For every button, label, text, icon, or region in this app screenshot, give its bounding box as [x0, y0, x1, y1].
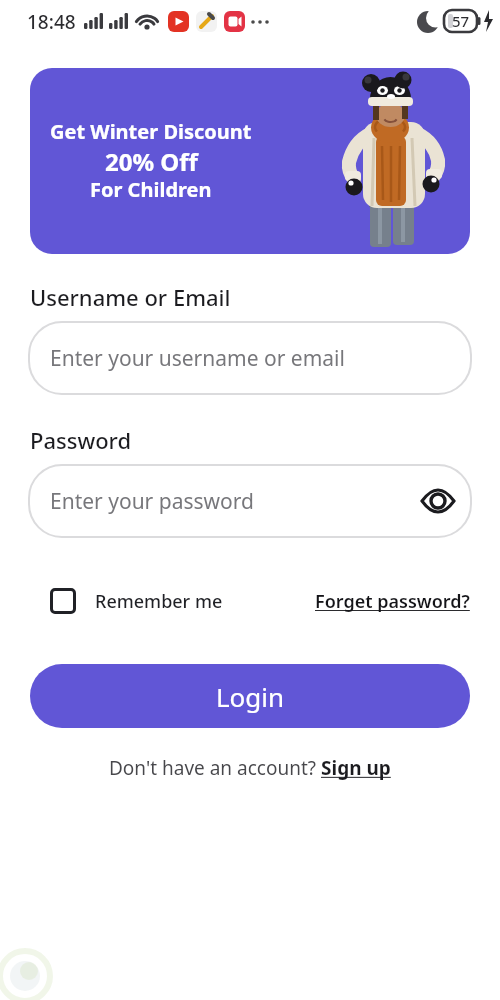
button[interactable]: Sign up: [321, 755, 391, 781]
button[interactable]: Login: [30, 664, 470, 728]
button[interactable]: Forget password?: [315, 589, 470, 614]
button[interactable]: Get Winter Discount: [30, 68, 470, 254]
staticText: Login: [216, 679, 285, 714]
staticText: 20% Off: [105, 145, 198, 178]
staticText: Username or Email: [30, 282, 231, 312]
staticText: Don't have an account?: [109, 755, 321, 781]
staticText: For Children: [90, 176, 212, 203]
staticText: Password: [30, 425, 132, 455]
staticText: Enter your username or email: [50, 344, 345, 373]
staticText: 18:48: [27, 9, 76, 35]
button[interactable]: Remember me: [95, 589, 223, 614]
button[interactable]: Enter your username or email: [28, 321, 472, 395]
button[interactable]: Enter your password: [28, 464, 472, 538]
staticText: Get Winter Discount: [50, 118, 252, 145]
staticText: Enter your password: [50, 487, 254, 516]
button[interactable]: [50, 588, 76, 614]
staticText: 57: [452, 11, 470, 31]
